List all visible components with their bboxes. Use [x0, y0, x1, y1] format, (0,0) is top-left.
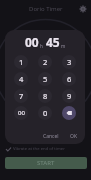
button[interactable]: 9: [62, 89, 76, 103]
staticText: h: [40, 43, 43, 49]
staticText: 7: [19, 91, 24, 101]
button[interactable]: OK: [68, 131, 80, 142]
staticText: OK: [70, 133, 78, 140]
staticText: 4: [19, 74, 24, 84]
button[interactable]: Cancel: [41, 131, 61, 142]
button[interactable]: Backspace: [62, 106, 76, 120]
staticText: Cancel: [43, 133, 59, 140]
staticText: START: [37, 159, 55, 167]
staticText: 00: [18, 109, 25, 117]
button[interactable]: 4: [14, 72, 28, 86]
button[interactable]: 3: [62, 55, 76, 69]
staticText: 6: [67, 74, 72, 84]
button[interactable]: 2: [38, 55, 52, 69]
button[interactable]: 6: [62, 72, 76, 86]
staticText: 3: [67, 57, 72, 67]
staticText: Dorio Timer: [29, 5, 63, 13]
staticText: 8: [43, 91, 48, 101]
staticText: 9: [67, 91, 72, 101]
button[interactable]: 1: [14, 55, 28, 69]
staticText: 1: [19, 57, 24, 67]
staticText: 45: [46, 34, 60, 50]
button[interactable]: 5: [38, 72, 52, 86]
button[interactable]: START: [5, 157, 87, 169]
button[interactable]: Vibrate at the end of timer: [0, 145, 91, 153]
button[interactable]: 8: [38, 89, 52, 103]
button[interactable]: Settings: [78, 4, 88, 14]
button[interactable]: 00: [14, 106, 28, 120]
staticText: 5: [43, 74, 48, 84]
staticText: 00: [25, 34, 39, 50]
staticText: 2: [43, 57, 48, 67]
staticText: 0: [43, 108, 48, 118]
staticText: m: [61, 43, 66, 49]
button[interactable]: 0: [38, 106, 52, 120]
staticText: Vibrate at the end of timer: [13, 146, 65, 152]
button[interactable]: 7: [14, 89, 28, 103]
